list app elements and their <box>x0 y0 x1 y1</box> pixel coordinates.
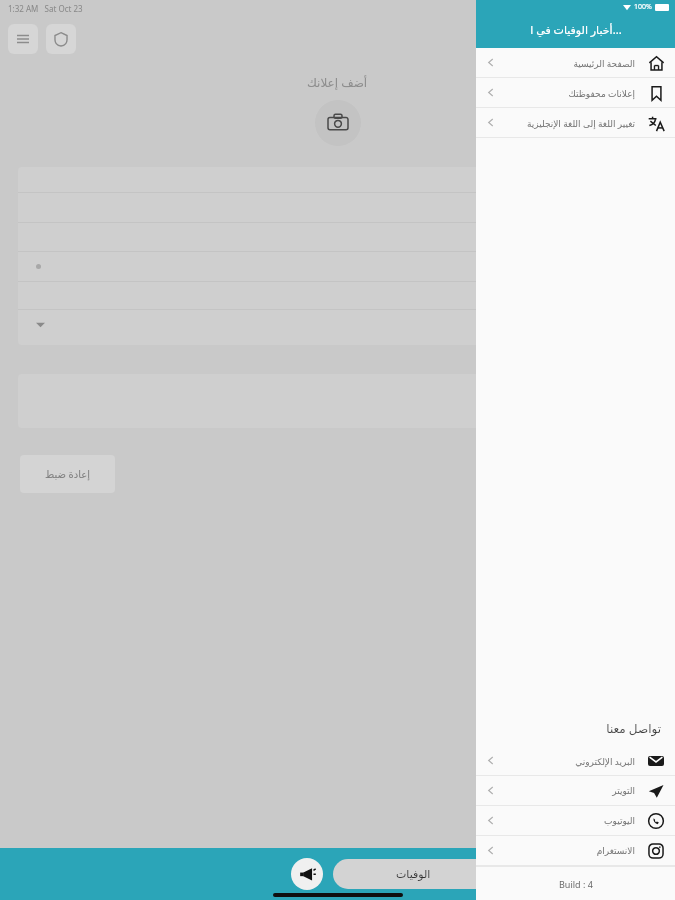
staticText: أخبار الوفيات في ا... <box>530 22 622 37</box>
button[interactable] <box>36 252 675 281</box>
staticText: 1:32 AM Sat Oct 23 <box>8 3 83 14</box>
staticText: Build : 4 <box>559 878 593 890</box>
button[interactable]: الصفحة الرئيسية <box>476 48 675 77</box>
staticText: التويتر <box>612 786 635 796</box>
staticText: الانستغرام <box>596 846 635 856</box>
button[interactable]: Add photo <box>315 100 361 146</box>
staticText: تواصل معنا <box>476 720 661 736</box>
staticText: تغيير اللغة إلى اللغة الإنجليزية <box>526 117 635 129</box>
button[interactable]: تغيير اللغة إلى اللغة الإنجليزية <box>476 108 675 137</box>
button[interactable]: التويتر <box>476 776 675 805</box>
button[interactable]: إعلانات محفوظتك <box>476 78 675 107</box>
button[interactable] <box>36 310 675 339</box>
staticText: أضف إعلانك <box>307 74 368 90</box>
staticText: 100% <box>634 2 652 12</box>
staticText: الوفيات <box>396 868 431 881</box>
button[interactable]: البريد الإلكتروني <box>476 746 675 775</box>
staticText: اليوتيوب <box>604 816 635 826</box>
staticText: إعادة ضبط <box>45 467 91 481</box>
button[interactable]: Announcements <box>291 858 323 890</box>
button[interactable]: إعادة ضبط <box>20 455 115 493</box>
staticText: الصفحة الرئيسية <box>573 57 635 69</box>
button[interactable]: Menu <box>8 24 38 54</box>
button[interactable]: الانستغرام <box>476 836 675 865</box>
button[interactable]: المرضى <box>505 859 665 889</box>
button[interactable] <box>36 193 675 222</box>
button[interactable]: الوفيات <box>333 859 493 889</box>
button[interactable]: اليوتيوب <box>476 806 675 835</box>
staticText: البريد الإلكتروني <box>575 755 635 767</box>
staticText: إعلانات محفوظتك <box>568 87 635 99</box>
button[interactable]: Protection <box>46 24 76 54</box>
